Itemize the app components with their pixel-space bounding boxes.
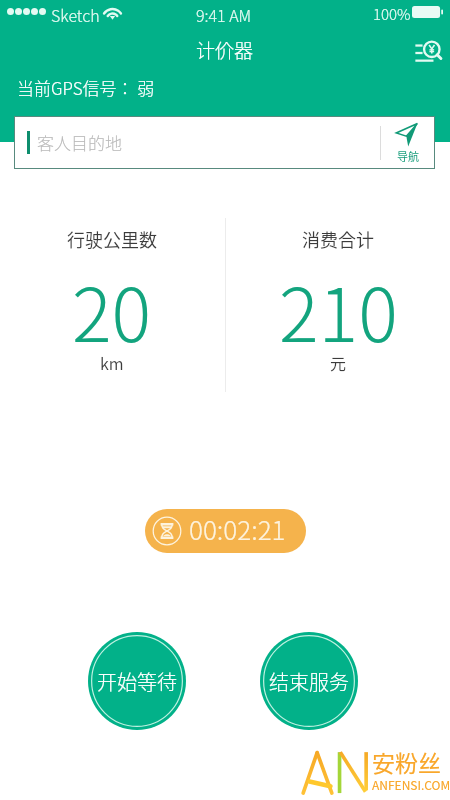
button[interactable]: 开始等待 xyxy=(88,632,186,730)
button[interactable]: Fare list search xyxy=(409,35,444,70)
staticText: 开始等待 xyxy=(97,667,177,696)
staticText: 210 xyxy=(279,256,398,363)
staticText: 当前GPS信号： 弱 xyxy=(17,75,155,100)
staticText: 元 xyxy=(330,351,347,374)
staticText: ANFENSI.COM xyxy=(372,776,450,793)
staticText: 行驶公里数 xyxy=(67,226,157,252)
button[interactable]: 结束服务 xyxy=(260,632,358,730)
button[interactable]: 00:02:21 xyxy=(145,509,306,553)
staticText: 安粉丝 xyxy=(372,745,441,778)
staticText: 20 xyxy=(72,256,152,363)
staticText: Sketch xyxy=(51,3,100,26)
staticText: 结束服务 xyxy=(269,667,349,696)
staticText: 客人目的地 xyxy=(37,130,122,155)
button[interactable]: 导航 xyxy=(381,117,434,168)
staticText: 9:41 AM xyxy=(196,3,252,26)
staticText: km xyxy=(100,351,124,374)
staticText: 消费合计 xyxy=(302,226,374,252)
staticText: 计价器 xyxy=(196,36,254,64)
staticText: 00:02:21 xyxy=(189,510,286,548)
staticText: 导航 xyxy=(397,148,419,164)
staticText: 100% xyxy=(373,3,411,25)
